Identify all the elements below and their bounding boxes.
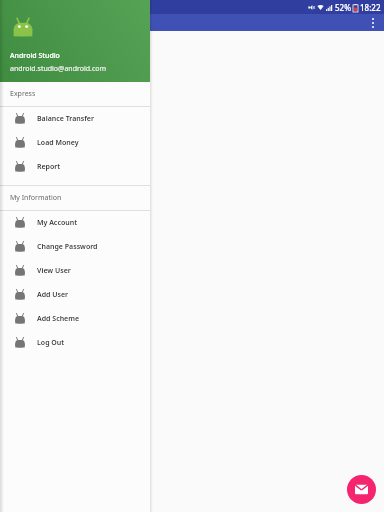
- button[interactable]: Add User: [0, 283, 150, 307]
- staticText: Load Money: [37, 138, 79, 148]
- button[interactable]: Change Password: [0, 235, 150, 259]
- button[interactable]: Android Studio: [0, 0, 150, 82]
- staticText: Add Scheme: [37, 314, 80, 324]
- button[interactable]: Load Money: [0, 131, 150, 155]
- button[interactable]: Log Out: [0, 331, 150, 355]
- staticText: Change Password: [37, 242, 98, 252]
- staticText: DrawerFocus: [9, 15, 78, 30]
- staticText: Log Out: [37, 338, 65, 348]
- staticText: 52%: [335, 2, 351, 13]
- button[interactable]: Compose message: [347, 475, 376, 504]
- button[interactable]: My Account: [0, 211, 150, 235]
- staticText: android.studio@android.com: [10, 64, 107, 74]
- staticText: My Information: [10, 193, 62, 203]
- staticText: My Account: [37, 218, 77, 228]
- staticText: Android Studio: [10, 51, 60, 61]
- staticText: Add User: [37, 290, 69, 300]
- button[interactable]: Report: [0, 155, 150, 179]
- staticText: Express: [10, 89, 36, 99]
- button[interactable]: Add Scheme: [0, 307, 150, 331]
- button[interactable]: More options: [362, 14, 384, 31]
- staticText: View User: [37, 266, 71, 276]
- staticText: 18:22: [360, 2, 381, 13]
- button[interactable]: Balance Transfer: [0, 107, 150, 131]
- staticText: Balance Transfer: [37, 114, 94, 124]
- button[interactable]: View User: [0, 259, 150, 283]
- staticText: Report: [37, 162, 61, 172]
